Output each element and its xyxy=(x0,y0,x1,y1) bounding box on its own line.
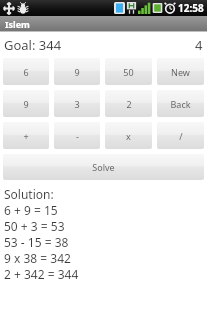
button[interactable]: 3 xyxy=(54,90,100,117)
staticText: / xyxy=(179,130,183,142)
button[interactable]: Solve xyxy=(3,154,204,180)
staticText: 53 - 15 = 38 xyxy=(4,234,69,250)
button[interactable]: 6 xyxy=(3,58,49,85)
button[interactable]: Back xyxy=(157,90,204,117)
staticText: Back xyxy=(170,98,191,110)
staticText: 50 + 3 = 53 xyxy=(4,218,65,234)
button[interactable]: 2 xyxy=(105,90,152,117)
staticText: Goal: 344 xyxy=(4,36,62,54)
staticText: Islem xyxy=(5,18,30,30)
staticText: New xyxy=(171,66,190,78)
staticText: 12:58 xyxy=(178,1,204,15)
button[interactable]: + xyxy=(3,122,49,149)
staticText: 9 xyxy=(74,66,80,78)
staticText: x xyxy=(126,130,131,142)
button[interactable]: - xyxy=(54,122,100,149)
button[interactable]: 9 xyxy=(54,58,100,85)
staticText: Solution: xyxy=(4,186,54,202)
staticText: 9 xyxy=(23,98,29,110)
staticText: 3 xyxy=(74,98,80,110)
staticText: 4 xyxy=(195,36,203,54)
staticText: 9 x 38 = 342 xyxy=(4,250,71,266)
button[interactable]: 9 xyxy=(3,90,49,117)
staticText: 2 xyxy=(126,98,132,110)
staticText: 50 xyxy=(123,66,134,78)
staticText: 2 + 342 = 344 xyxy=(4,266,79,282)
staticText: 6 + 9 = 15 xyxy=(4,202,58,218)
button[interactable]: x xyxy=(105,122,152,149)
staticText: + xyxy=(23,130,29,142)
staticText: - xyxy=(76,130,79,142)
button[interactable]: / xyxy=(157,122,204,149)
staticText: 6 xyxy=(23,66,29,78)
button[interactable]: 50 xyxy=(105,58,152,85)
staticText: Solve xyxy=(92,161,115,173)
button[interactable]: New xyxy=(157,58,204,85)
